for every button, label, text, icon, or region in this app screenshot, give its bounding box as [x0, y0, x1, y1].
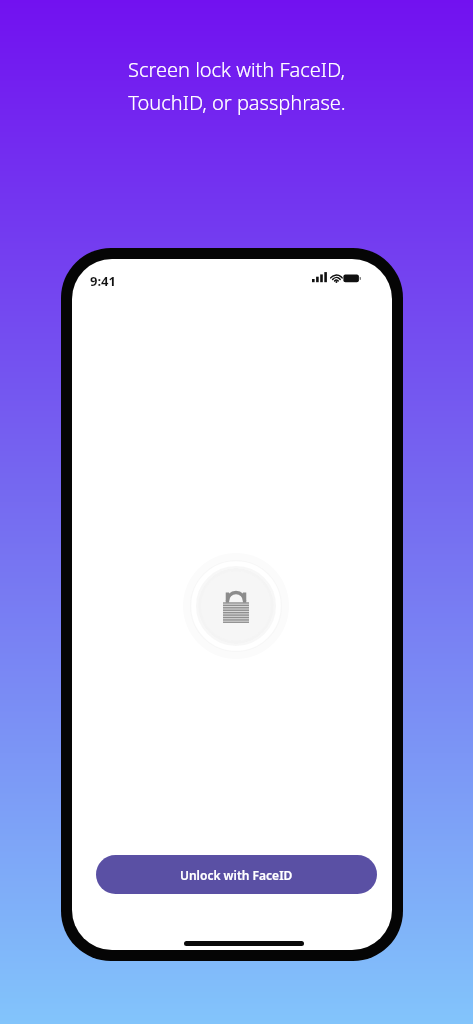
button[interactable]: Locked: [183, 553, 289, 659]
button[interactable]: Unlock with FaceID: [96, 855, 377, 894]
staticText: Screen lock with FaceID,: [128, 56, 345, 83]
staticText: TouchID, or passphrase.: [128, 89, 346, 116]
staticText: Unlock with FaceID: [180, 867, 293, 883]
staticText: 9:41: [90, 272, 116, 290]
